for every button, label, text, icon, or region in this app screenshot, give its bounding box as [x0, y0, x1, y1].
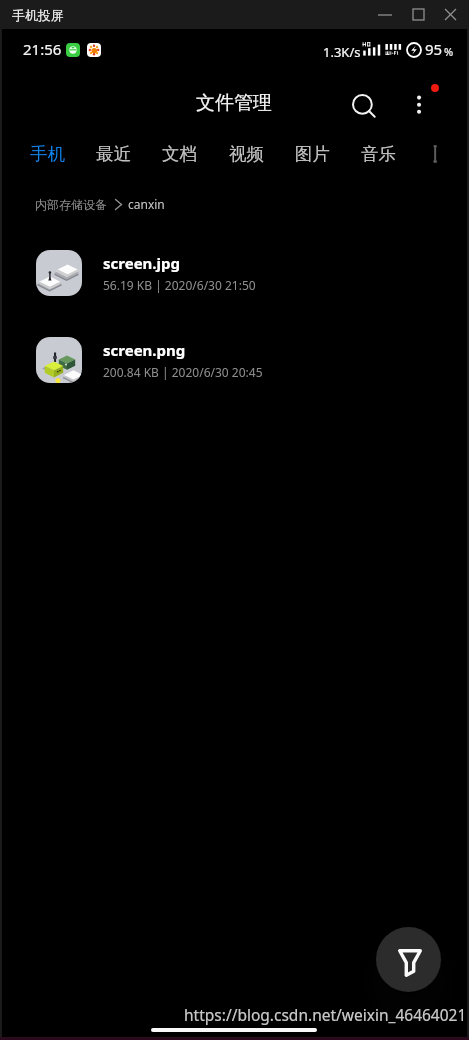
button[interactable]: canxin	[128, 196, 165, 212]
button[interactable]	[0, 230, 469, 317]
button[interactable]: Maximize	[395, 0, 441, 29]
button[interactable]: 手机	[30, 140, 70, 168]
staticText: https://blog.csdn.net/weixin_46464021	[184, 1004, 467, 1025]
button[interactable]: Filter	[376, 927, 441, 992]
staticText: 音乐	[361, 143, 396, 165]
staticText: 56.19 KB | 2020/6/30 21:50	[103, 277, 256, 293]
staticText: 21:56	[23, 39, 62, 59]
staticText: 手机	[30, 143, 65, 165]
staticText: 最近	[96, 143, 131, 165]
button[interactable]: 音乐	[361, 140, 401, 168]
staticText: 95	[425, 39, 443, 59]
staticText: screen.png	[103, 340, 186, 360]
staticText: 手机投屏	[12, 7, 64, 23]
button[interactable]: 图片	[295, 140, 335, 168]
button[interactable]: Minimize	[362, 0, 408, 29]
button[interactable]: 文档	[162, 140, 202, 168]
button[interactable]: 视频	[229, 140, 269, 168]
button[interactable]: More options	[400, 84, 438, 128]
staticText: %	[444, 44, 454, 59]
staticText: 1.3K/s	[323, 43, 361, 61]
button[interactable]: 最近	[96, 140, 136, 168]
button[interactable]	[0, 317, 469, 404]
button[interactable]: 内部存储设备	[35, 197, 107, 212]
staticText: 视频	[229, 143, 264, 165]
button[interactable]: Search	[340, 80, 388, 132]
staticText: 文档	[162, 143, 197, 165]
staticText: 图片	[295, 143, 330, 165]
staticText: screen.jpg	[103, 253, 180, 273]
button[interactable]	[428, 140, 469, 168]
staticText: 200.84 KB | 2020/6/30 20:45	[103, 364, 263, 380]
button[interactable]: Close	[432, 0, 469, 29]
staticText: 文件管理	[196, 91, 272, 115]
